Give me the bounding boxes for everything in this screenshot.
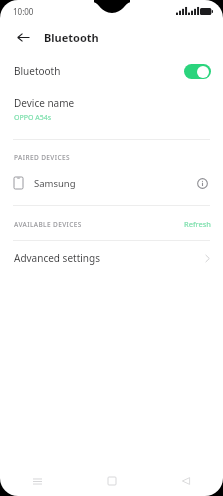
button[interactable]: Device details: [193, 174, 211, 192]
staticText: 10:00: [13, 6, 34, 17]
staticText: Refresh: [184, 219, 211, 229]
staticText: PAIRED DEVICES: [14, 153, 70, 162]
button[interactable]: Back: [13, 27, 33, 47]
staticText: Bluetooth: [14, 64, 61, 78]
button[interactable]: Back: [149, 466, 223, 496]
staticText: Samsung: [34, 177, 76, 190]
button[interactable]: Bluetooth toggle: [184, 64, 211, 79]
staticText: AVAILABLE DEVICES: [14, 220, 82, 229]
staticText: OPPO A54s: [14, 113, 52, 123]
button[interactable]: Samsung: [0, 169, 223, 197]
button[interactable]: Home: [75, 466, 149, 496]
button[interactable]: Refresh: [184, 219, 211, 229]
staticText: Device name: [14, 96, 75, 110]
button[interactable]: Device name: [0, 94, 223, 125]
staticText: Advanced settings: [14, 251, 100, 265]
staticText: Bluetooth: [44, 30, 99, 45]
button[interactable]: Bluetooth: [0, 58, 223, 84]
button[interactable]: Advanced settings: [0, 241, 223, 275]
button[interactable]: Recents: [0, 466, 75, 496]
